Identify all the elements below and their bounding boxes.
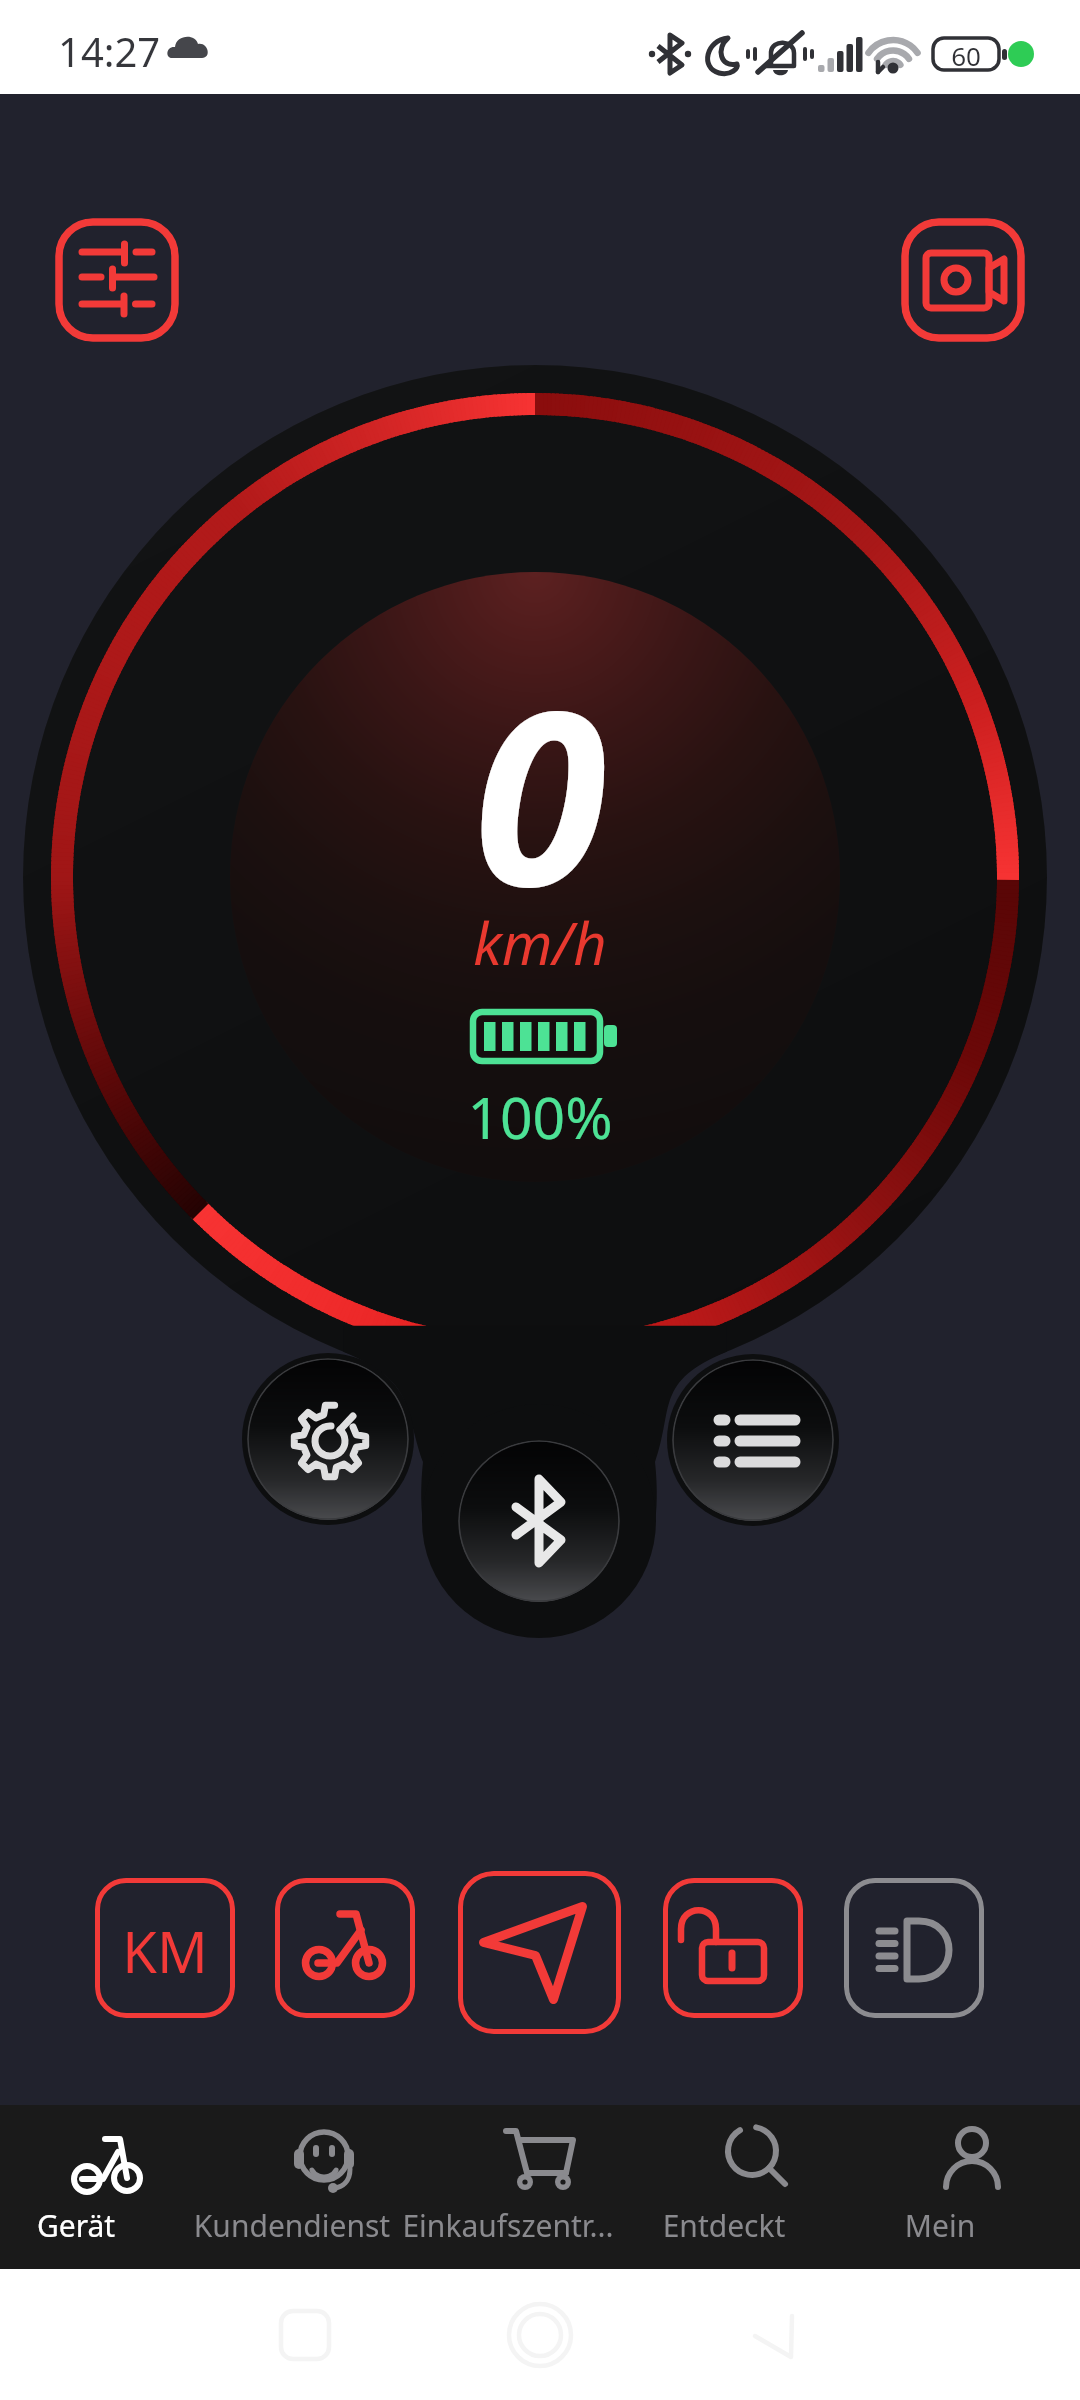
button[interactable]: Mein [864,2105,1080,2269]
button[interactable]: Entdeckt [648,2105,864,2269]
staticText: 100% [0,1078,1080,1156]
button[interactable]: Einkaufszentr... [432,2105,648,2269]
staticText: 60 [933,38,999,73]
button[interactable]: Kilometers [95,1878,235,2018]
staticText: Gerät [0,2205,184,2246]
staticText: Mein [832,2205,1048,2246]
button[interactable]: Headlight [844,1878,984,2018]
button[interactable]: Settings [247,1358,409,1520]
staticText: 14:27 [58,24,161,78]
button[interactable]: Scooter [275,1878,415,2018]
button[interactable]: Kundendienst [216,2105,432,2269]
staticText: km/h [0,903,1080,982]
button[interactable]: Camera [901,218,1025,342]
staticText: Kundendienst [184,2205,400,2246]
button[interactable]: Lock [663,1878,803,2018]
button[interactable]: Gerät [0,2105,216,2269]
staticText: Entdeckt [616,2205,832,2246]
staticText: KM [95,1913,235,1989]
button[interactable]: Menu [672,1359,834,1521]
staticText: 0 [0,629,1080,956]
button[interactable]: Tuning settings [55,218,179,342]
button[interactable]: Navigate [458,1871,621,2034]
staticText: Einkaufszentr... [400,2205,616,2246]
button[interactable]: Bluetooth [458,1440,620,1602]
